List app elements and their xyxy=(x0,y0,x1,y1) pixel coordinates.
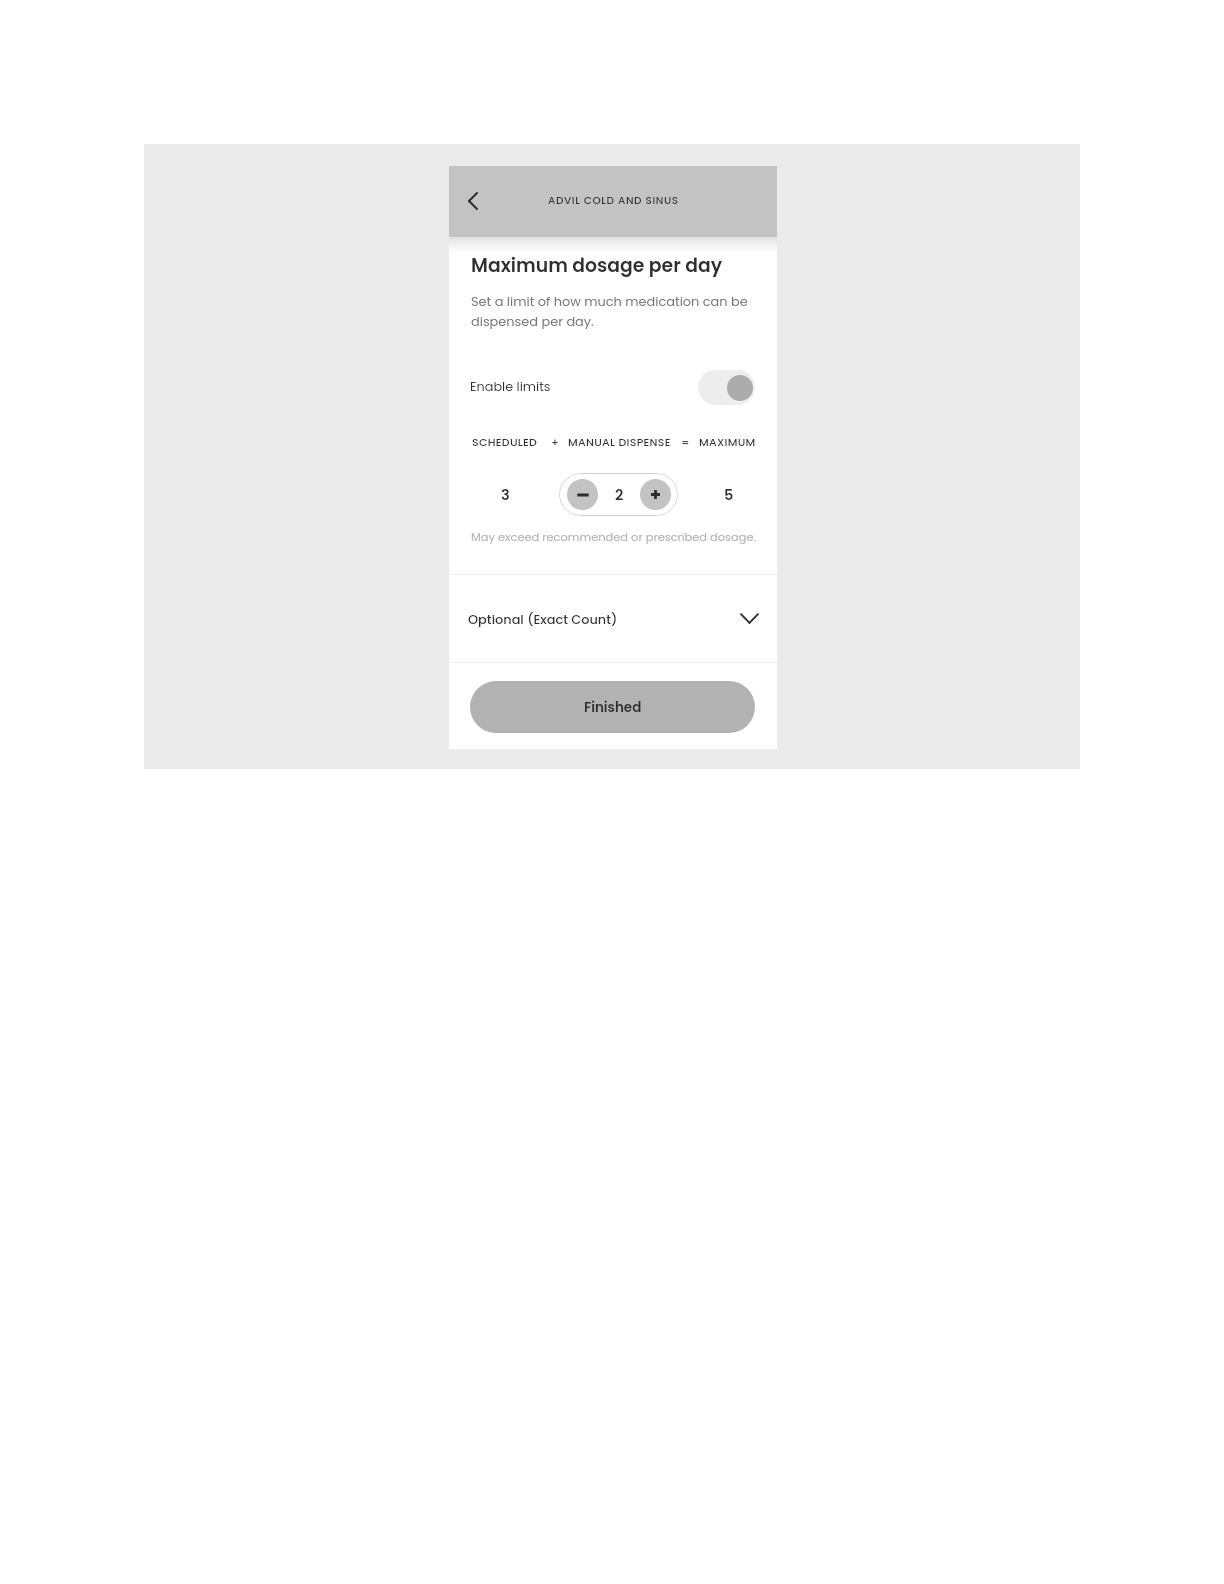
staticText: MAXIMUM xyxy=(699,434,756,449)
staticText: ADVIL COLD AND SINUS xyxy=(548,193,679,208)
button[interactable]: Back xyxy=(456,184,490,218)
staticText: Optional (Exact Count) xyxy=(468,610,618,628)
staticText: 3 xyxy=(501,485,510,505)
button[interactable]: Decrease xyxy=(567,479,598,510)
staticText: Finished xyxy=(584,698,642,717)
staticText: = xyxy=(681,434,690,449)
staticText: 5 xyxy=(724,485,734,505)
staticText: Set a limit of how much medication can b… xyxy=(471,292,751,331)
button[interactable]: Finished xyxy=(470,681,755,733)
button[interactable]: Enable limits xyxy=(698,370,755,405)
other: Expand Optional (Exact Count) xyxy=(740,613,759,624)
staticText: Maximum dosage per day xyxy=(471,252,723,278)
staticText: Enable limits xyxy=(470,378,551,396)
button[interactable]: Optional (Exact Count) xyxy=(449,575,777,662)
staticText: SCHEDULED xyxy=(472,434,538,449)
staticText: May exceed recommended or prescribed dos… xyxy=(471,529,756,545)
button[interactable]: Increase xyxy=(640,479,671,510)
staticText: + xyxy=(551,434,560,449)
staticText: MANUAL DISPENSE xyxy=(568,434,671,449)
staticText: 2 xyxy=(615,485,624,505)
